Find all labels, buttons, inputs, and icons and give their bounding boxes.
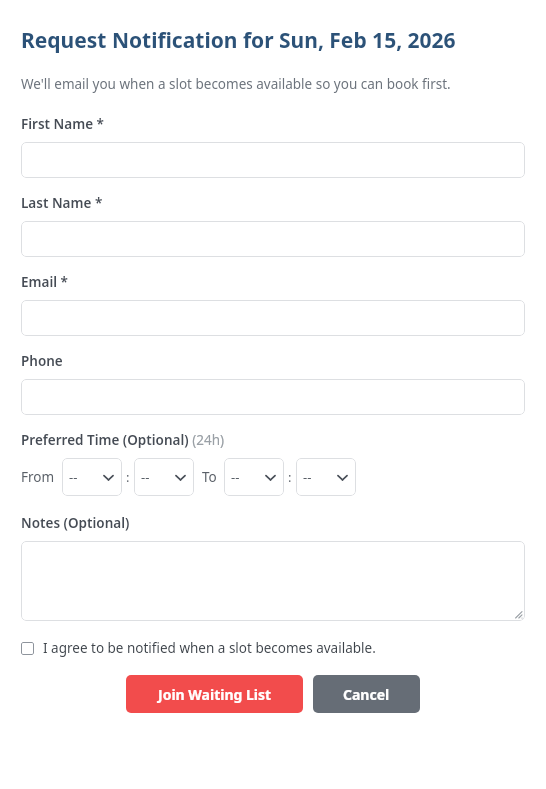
button[interactable] [21, 142, 525, 178]
staticText: Preferred Time (Optional) (24h) [21, 431, 225, 449]
button[interactable]: From minute [134, 458, 194, 496]
button[interactable]: I agree to be notified when a slot becom… [21, 639, 525, 657]
staticText: -- [141, 468, 150, 486]
button[interactable] [21, 379, 525, 415]
button[interactable]: Cancel [313, 675, 420, 713]
button[interactable] [21, 300, 525, 336]
staticText: Email * [21, 273, 68, 291]
button[interactable]: Join Waiting List [126, 675, 303, 713]
staticText: To [202, 468, 217, 486]
staticText: Join Waiting List [158, 685, 272, 704]
button[interactable] [21, 541, 525, 621]
staticText: First Name * [21, 115, 104, 133]
staticText: : [288, 468, 292, 486]
staticText: Notes (Optional) [21, 514, 130, 532]
staticText: We'll email you when a slot becomes avai… [21, 75, 451, 93]
button[interactable] [21, 221, 525, 257]
staticText: Phone [21, 352, 63, 370]
staticText: -- [231, 468, 240, 486]
staticText: -- [69, 468, 78, 486]
button[interactable]: To minute [296, 458, 356, 496]
staticText: : [126, 468, 130, 486]
button[interactable]: To hour [224, 458, 284, 496]
button[interactable]: From hour [62, 458, 122, 496]
staticText: I agree to be notified when a slot becom… [43, 639, 376, 657]
staticText: From [21, 468, 55, 486]
staticText: Request Notification for Sun, Feb 15, 20… [21, 26, 456, 55]
staticText: -- [303, 468, 312, 486]
staticText: Cancel [343, 685, 390, 704]
staticText: Last Name * [21, 194, 103, 212]
